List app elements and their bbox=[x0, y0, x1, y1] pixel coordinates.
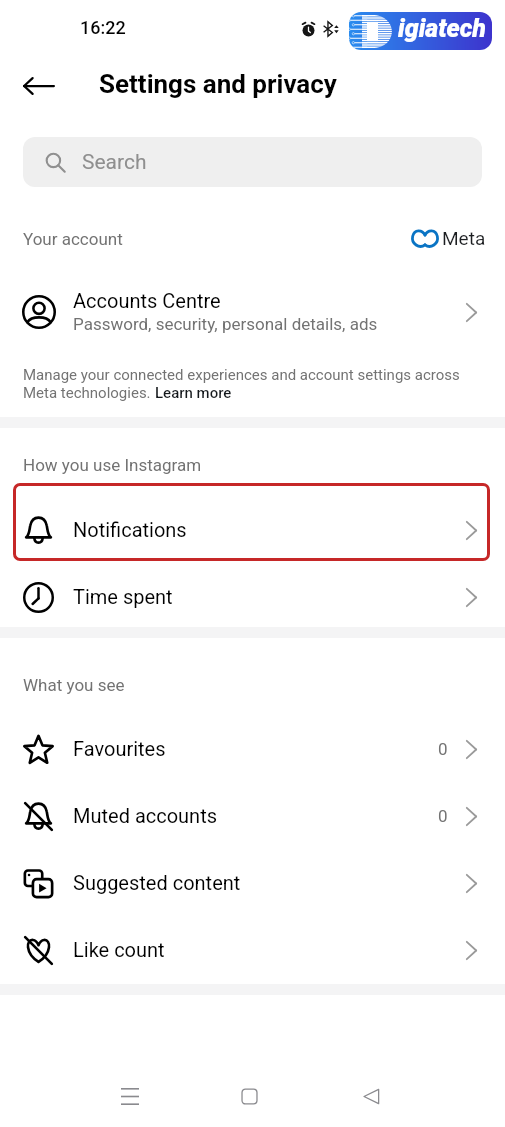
staticText: 0 bbox=[438, 739, 448, 759]
staticText: How you use Instagram bbox=[23, 455, 202, 475]
button[interactable]: Notifications bbox=[0, 497, 505, 564]
staticText: Muted accounts bbox=[73, 804, 218, 827]
button[interactable]: Muted accounts bbox=[0, 783, 505, 850]
button[interactable]: Home bbox=[224, 1070, 276, 1122]
button[interactable]: Recent apps bbox=[104, 1070, 156, 1122]
button[interactable]: Accounts Centre bbox=[0, 278, 505, 346]
staticText: Favourites bbox=[73, 737, 166, 760]
button[interactable]: Like count bbox=[0, 917, 505, 984]
staticText: Accounts Centre bbox=[73, 289, 221, 312]
staticText: 16:22 bbox=[80, 17, 126, 38]
staticText: Meta bbox=[442, 227, 486, 249]
staticText: Suggested content bbox=[73, 871, 241, 894]
button[interactable]: Back bbox=[345, 1070, 397, 1122]
button[interactable]: Search bbox=[23, 137, 482, 187]
button[interactable]: Back bbox=[10, 57, 68, 115]
button[interactable]: Time spent bbox=[0, 564, 505, 631]
staticText: Password, security, personal details, ad… bbox=[73, 314, 378, 334]
staticText: Time spent bbox=[73, 585, 173, 608]
staticText: Manage your connected experiences and ac… bbox=[23, 366, 460, 384]
button[interactable]: Suggested content bbox=[0, 850, 505, 917]
staticText: Like count bbox=[73, 938, 165, 961]
staticText: Settings and privacy bbox=[99, 69, 337, 99]
staticText: Your account bbox=[23, 229, 123, 249]
button[interactable]: Favourites bbox=[0, 716, 505, 783]
staticText: Meta technologies. bbox=[23, 384, 155, 402]
staticText: 0 bbox=[438, 806, 448, 826]
staticText: Search bbox=[82, 150, 147, 175]
staticText: Notifications bbox=[73, 518, 187, 541]
staticText: igiatech bbox=[398, 14, 487, 43]
button[interactable]: Learn more bbox=[155, 384, 232, 402]
staticText: What you see bbox=[23, 675, 125, 695]
